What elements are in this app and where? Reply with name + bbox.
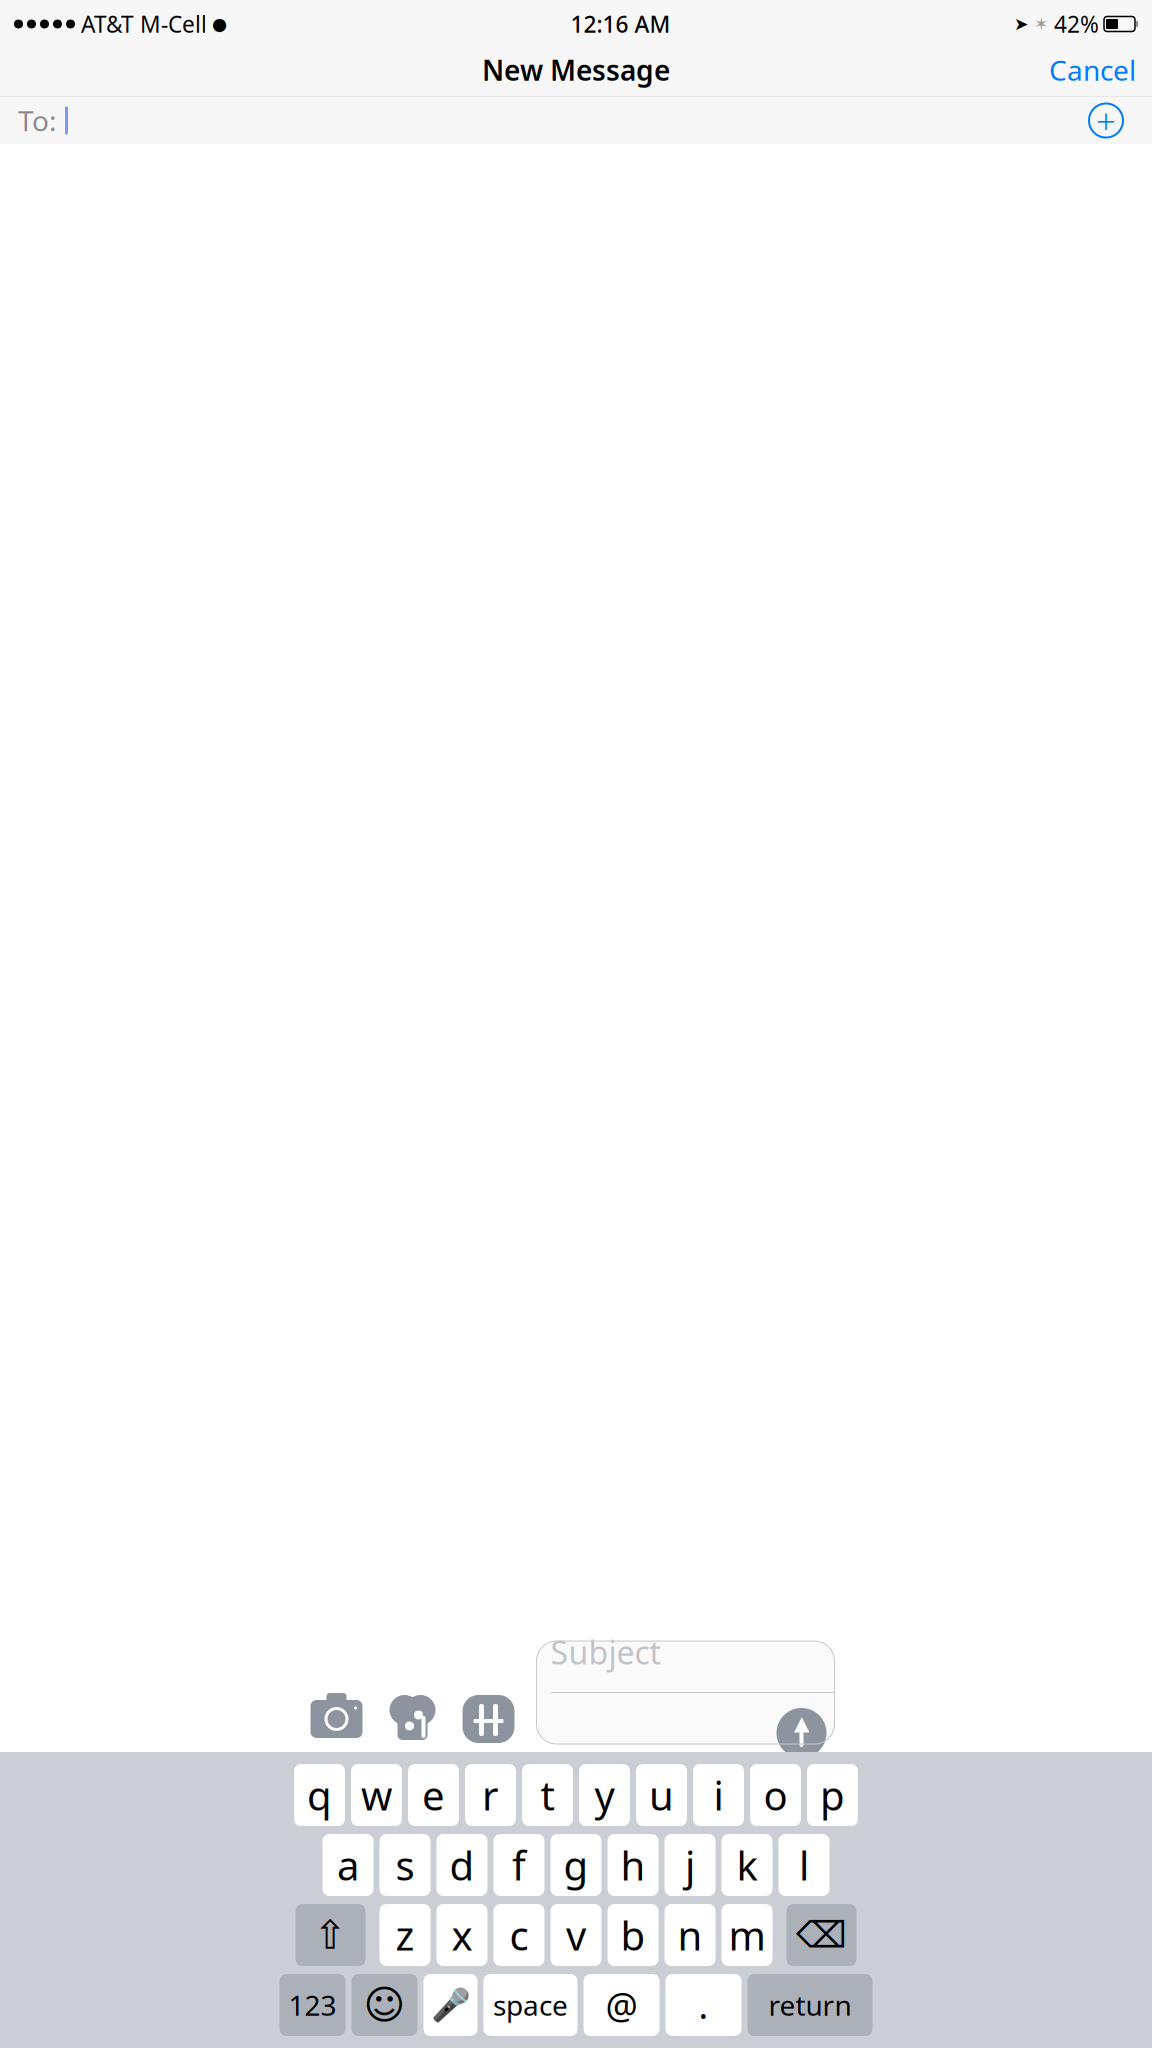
button[interactable]: Cancel [1033, 43, 1152, 97]
staticText: ✶ [1034, 14, 1049, 34]
button[interactable]: @ [583, 1974, 659, 2036]
button[interactable]: b [607, 1904, 658, 1966]
button[interactable]: t [522, 1764, 573, 1826]
button[interactable]: 123 [279, 1974, 345, 2036]
staticText: @ [605, 1981, 637, 2029]
staticText: . [698, 1981, 708, 2029]
staticText: k [736, 1838, 757, 1891]
staticText: AT&T M-Cell [81, 9, 207, 39]
staticText: ☺ [363, 1982, 405, 2028]
button[interactable]: Delete [786, 1904, 856, 1966]
button[interactable]: q [294, 1764, 345, 1826]
staticText: o [763, 1768, 787, 1821]
button[interactable]: Emoji [351, 1974, 417, 2036]
button[interactable]: c [493, 1904, 544, 1966]
button[interactable]: r [465, 1764, 516, 1826]
button[interactable]: v [550, 1904, 601, 1966]
button[interactable]: Send [776, 1708, 826, 1758]
button[interactable]: j [664, 1834, 715, 1896]
staticText: j [685, 1838, 695, 1891]
staticText: + [1096, 97, 1116, 143]
staticText: b [620, 1908, 645, 1961]
button[interactable]: m [721, 1904, 772, 1966]
staticText: q [307, 1768, 332, 1821]
button[interactable]: Digital Touch [386, 1694, 438, 1744]
staticText: space [493, 1986, 568, 2024]
staticText: ▲ [794, 1712, 809, 1734]
staticText: g [563, 1838, 588, 1891]
button[interactable]: h [607, 1834, 658, 1896]
staticText: c [509, 1908, 528, 1961]
staticText: return [768, 1986, 851, 2024]
button[interactable]: g [550, 1834, 601, 1896]
staticText: ● [212, 14, 227, 34]
staticText: p [820, 1768, 845, 1821]
staticText: Cancel [1049, 51, 1136, 89]
staticText: r [482, 1768, 499, 1821]
button[interactable]: App Store [460, 1694, 516, 1744]
button[interactable]: z [379, 1904, 430, 1966]
button[interactable]: l [778, 1834, 829, 1896]
button[interactable]: Shift [295, 1904, 365, 1966]
staticText: Subject [550, 1631, 661, 1673]
button[interactable]: e [408, 1764, 459, 1826]
staticText: i [713, 1768, 723, 1821]
staticText: u [649, 1768, 674, 1821]
staticText: 42% [1054, 9, 1099, 39]
button[interactable]: space [483, 1974, 577, 2036]
button[interactable]: y [579, 1764, 630, 1826]
button[interactable]: i [693, 1764, 744, 1826]
staticText: ⇧ [313, 1912, 347, 1958]
staticText: y [594, 1768, 614, 1821]
button[interactable]: p [807, 1764, 858, 1826]
staticText: 🎤 [430, 1987, 470, 2023]
button[interactable]: Add Contact [1080, 94, 1132, 146]
staticText: m [728, 1908, 765, 1961]
button[interactable]: d [436, 1834, 487, 1896]
staticText: z [395, 1908, 414, 1961]
staticText: 123 [288, 1986, 336, 2024]
staticText: e [422, 1768, 445, 1821]
staticText: l [799, 1838, 809, 1891]
button[interactable]: Dictate [423, 1974, 477, 2036]
button[interactable]: f [493, 1834, 544, 1896]
staticText: s [395, 1838, 414, 1891]
staticText: n [677, 1908, 702, 1961]
button[interactable]: w [351, 1764, 402, 1826]
button[interactable]: o [750, 1764, 801, 1826]
button[interactable]: s [379, 1834, 430, 1896]
staticText: a [337, 1838, 359, 1891]
staticText: To: [18, 102, 57, 139]
staticText: v [566, 1908, 586, 1961]
staticText: w [361, 1768, 392, 1821]
staticText: d [449, 1838, 474, 1891]
button[interactable]: x [436, 1904, 487, 1966]
button[interactable]: k [721, 1834, 772, 1896]
button[interactable]: a [322, 1834, 373, 1896]
button[interactable]: n [664, 1904, 715, 1966]
staticText: x [451, 1908, 472, 1961]
staticText: h [620, 1838, 645, 1891]
button[interactable]: Camera [308, 1694, 364, 1744]
button[interactable]: . [665, 1974, 741, 2036]
button[interactable]: u [636, 1764, 687, 1826]
staticText: t [540, 1768, 554, 1821]
staticText: ➤ [1014, 14, 1029, 34]
staticText: 12:16 AM [570, 9, 670, 39]
staticText: ⌫ [796, 1915, 847, 1955]
staticText: New Message [482, 51, 670, 89]
staticText: f [512, 1838, 526, 1891]
button[interactable]: return [747, 1974, 872, 2036]
